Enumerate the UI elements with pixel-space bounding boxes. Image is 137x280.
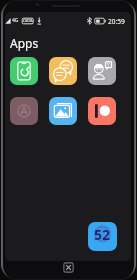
button[interactable]: Home — [63, 262, 74, 273]
staticText: DATA — [23, 18, 33, 23]
button[interactable]: Patreon — [88, 97, 116, 125]
button[interactable]: Alarm — [10, 97, 38, 125]
staticText: Apps — [10, 35, 39, 51]
button[interactable]: Phone — [10, 57, 38, 85]
button[interactable]: Gallery — [49, 97, 77, 125]
button[interactable]: Fifty two — [88, 222, 117, 251]
button[interactable]: Messages — [49, 57, 77, 85]
staticText: 4G — [12, 17, 19, 24]
staticText: 20:59 — [108, 17, 125, 26]
staticText: 52 — [94, 225, 111, 244]
button[interactable]: Support — [88, 57, 116, 85]
